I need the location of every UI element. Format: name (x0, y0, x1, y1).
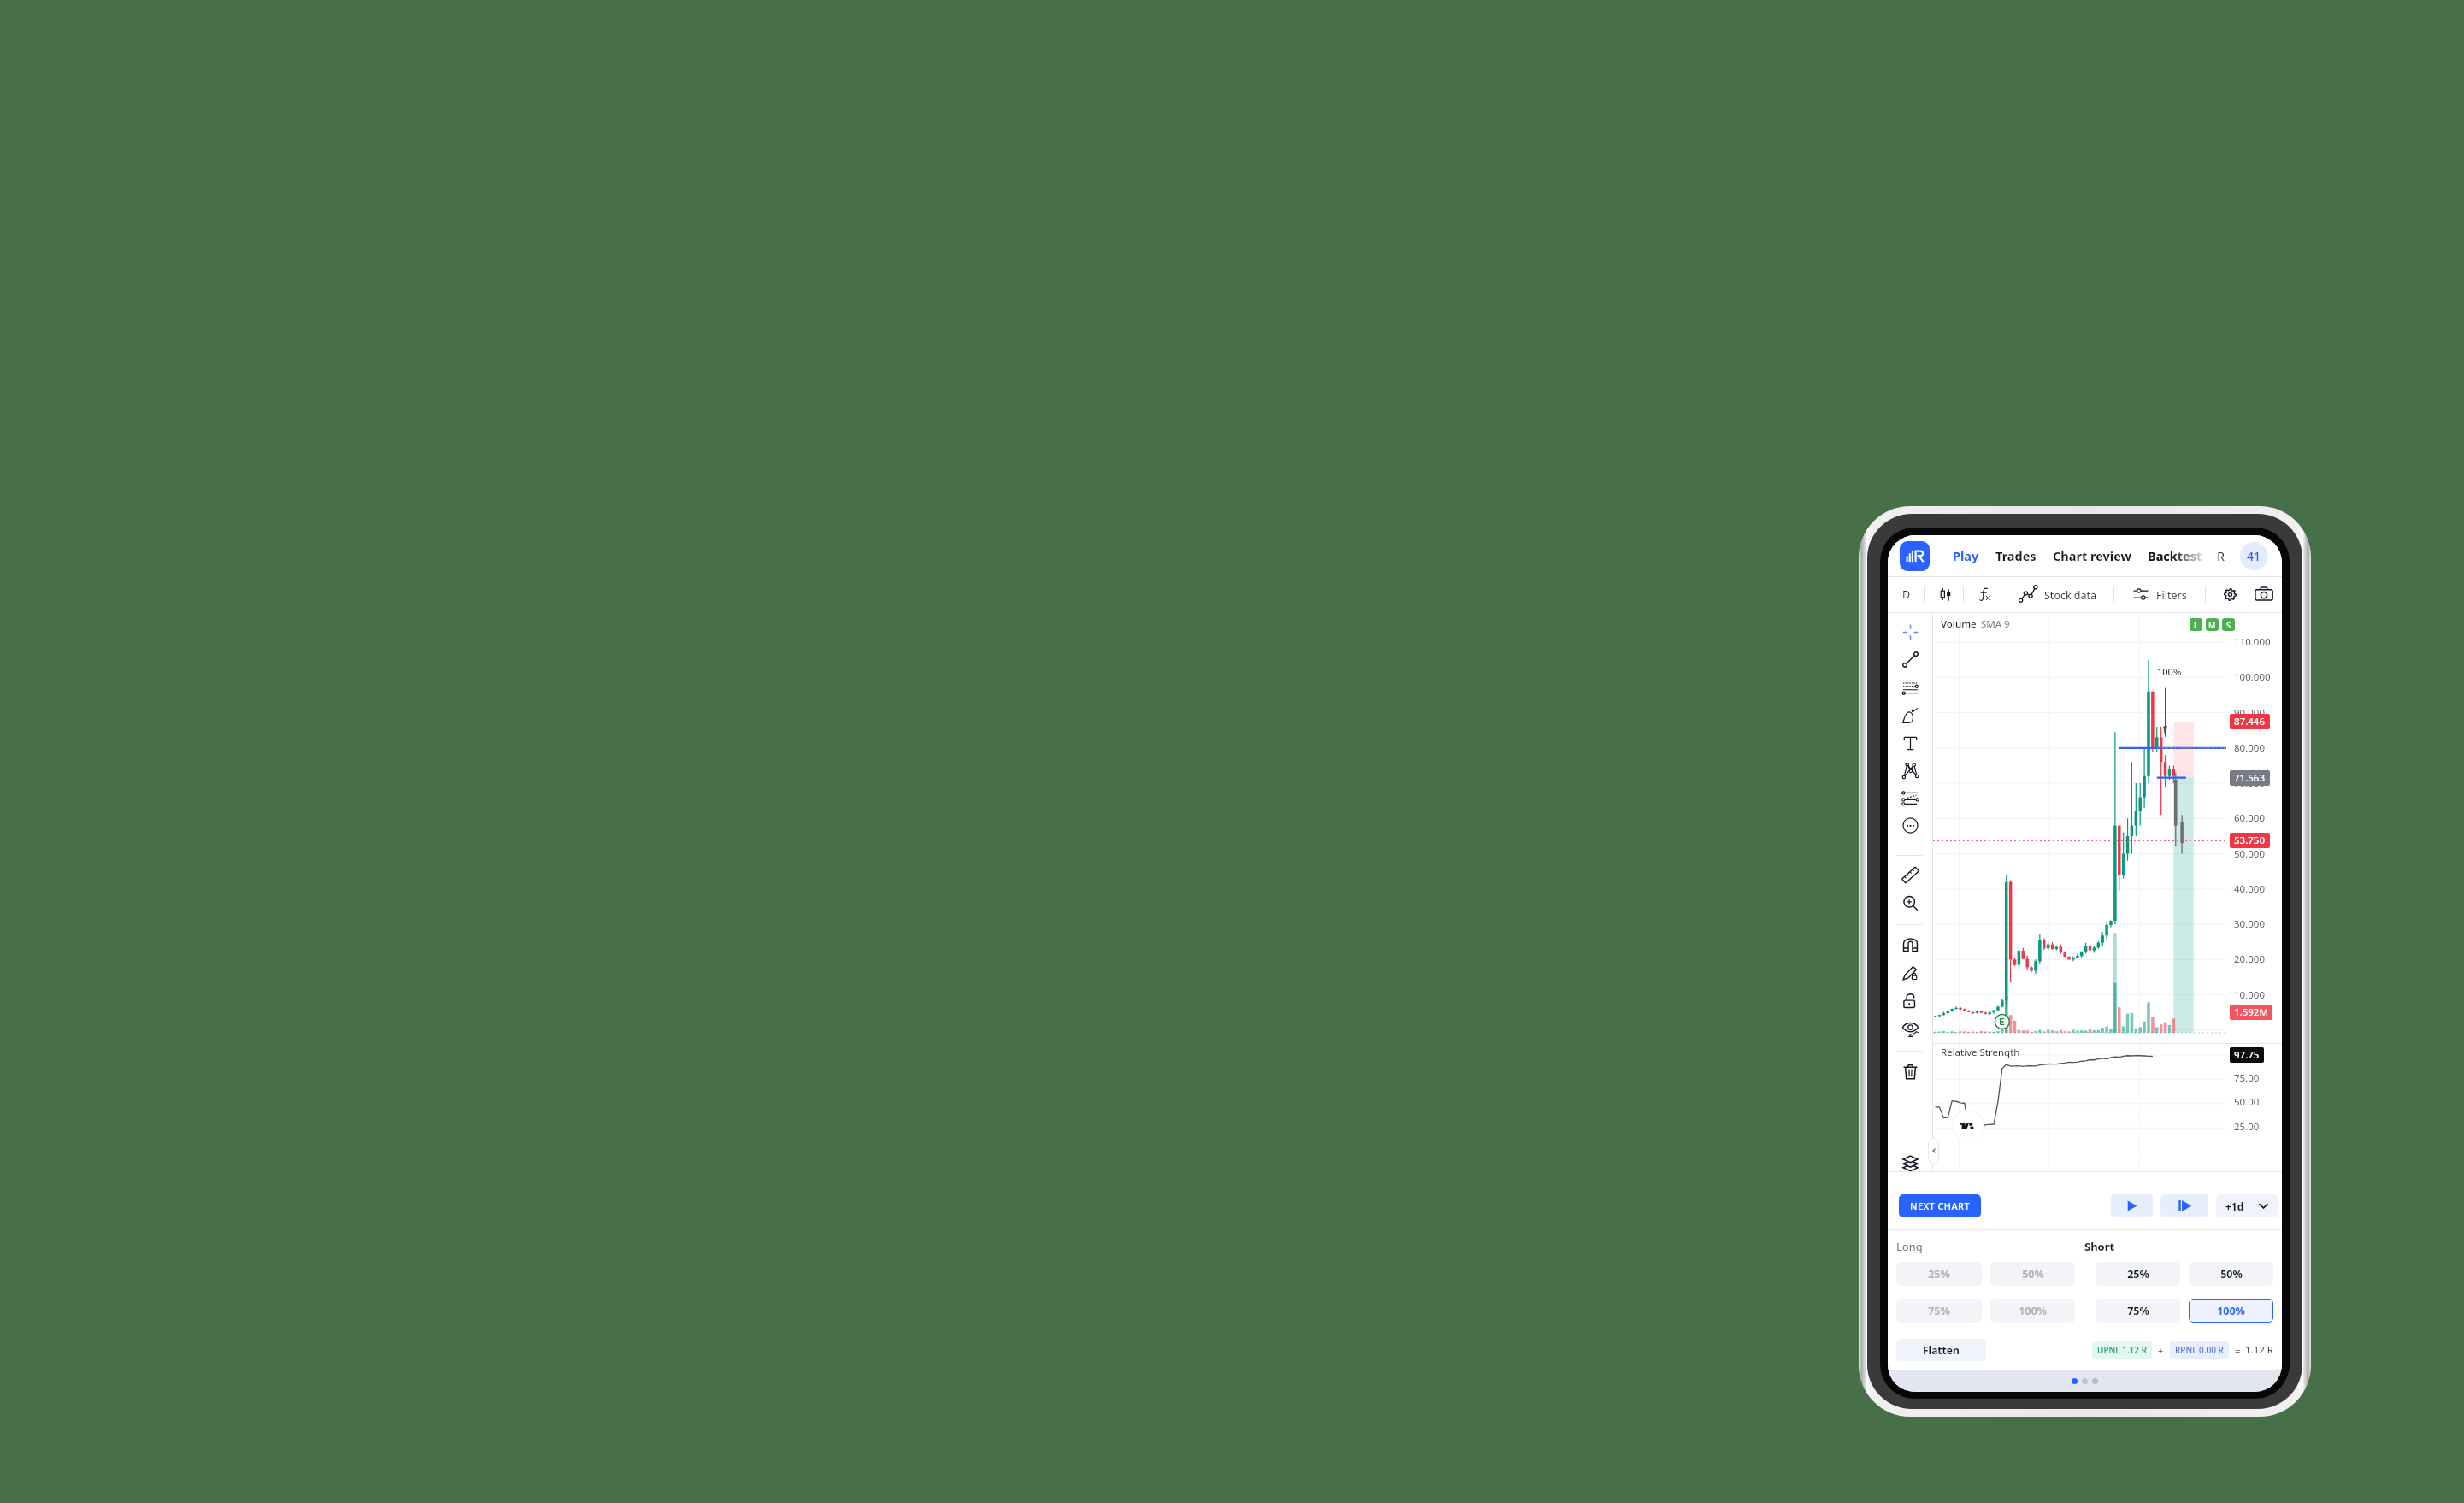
button[interactable]: Emoji (1893, 812, 1927, 838)
button[interactable]: Object tree (1893, 1150, 1927, 1176)
staticText: 97.75 (2234, 1048, 2260, 1062)
button[interactable]: 75% (1896, 1299, 1982, 1323)
staticText: 40.000 (2234, 882, 2265, 896)
button[interactable]: Crosshair (1893, 619, 1927, 645)
button[interactable]: Horizontal levels (1893, 675, 1927, 700)
staticText: Relative Strength (1941, 1046, 2020, 1059)
staticText: RPNL 0.00 R (2175, 1344, 2224, 1356)
button[interactable]: Play (2111, 1194, 2153, 1217)
button[interactable]: Trend line (1893, 646, 1927, 672)
button[interactable]: Brush (1893, 703, 1927, 728)
staticText: 41 (2247, 548, 2261, 564)
button[interactable]: Trades (1995, 547, 2037, 564)
button[interactable]: Play (1953, 547, 1979, 564)
staticText: 75% (2127, 1304, 2149, 1318)
staticText: 53.750 (2234, 834, 2266, 847)
staticText: 100% (2157, 665, 2182, 678)
staticText: Volume (1941, 617, 1977, 631)
staticText: Short (2084, 1239, 2273, 1254)
button[interactable]: Chart settings (2220, 582, 2240, 606)
staticText: R (2217, 547, 2225, 564)
button[interactable]: Lock drawings (1893, 987, 1927, 1013)
staticText: 50% (2022, 1267, 2044, 1282)
staticText: Chart review (2053, 547, 2131, 564)
staticText: +1d (2225, 1199, 2244, 1213)
button[interactable]: Measure (1893, 862, 1927, 887)
button[interactable]: NEXT CHART (1899, 1194, 1981, 1217)
button[interactable]: S (2222, 618, 2235, 631)
staticText: SMA 9 (1981, 617, 2010, 631)
staticText: 30.000 (2234, 917, 2265, 931)
button[interactable]: 100% (1990, 1299, 2075, 1323)
staticText: UPNL 1.12 R (2097, 1344, 2147, 1356)
staticText: 25% (1928, 1267, 1950, 1282)
staticText: 50% (2220, 1267, 2243, 1282)
button[interactable]: Step forward one bar (2160, 1194, 2208, 1217)
button[interactable]: Stock data (2044, 588, 2097, 603)
button[interactable]: Filters (2156, 588, 2187, 603)
staticText: 60.000 (2234, 811, 2265, 825)
staticText: Trades (1995, 547, 2037, 564)
button[interactable]: 50% (2189, 1262, 2273, 1286)
button[interactable]: Indicators (1975, 582, 1994, 606)
staticText: 75.00 (2234, 1071, 2260, 1085)
staticText: = (2235, 1344, 2241, 1357)
staticText: 70.000 (2234, 776, 2265, 790)
staticText: 1.592M (2234, 1005, 2268, 1019)
button[interactable]: Zoom in (1893, 890, 1927, 916)
button[interactable]: Projection (1893, 785, 1927, 810)
staticText: 87.446 (2234, 715, 2266, 728)
button[interactable]: Magnet mode (1893, 931, 1927, 957)
button[interactable]: D (1900, 586, 1913, 603)
staticText: 90.000 (2234, 706, 2265, 720)
button[interactable]: Chart type (1936, 582, 1955, 606)
staticText: D (1902, 587, 1911, 602)
button[interactable]: Filters (2131, 582, 2151, 606)
staticText: 100% (2217, 1304, 2245, 1318)
button[interactable]: L (2190, 618, 2202, 631)
button[interactable]: M (2206, 618, 2219, 631)
staticText: Backtest (2148, 547, 2202, 564)
button[interactable]: Text (1893, 730, 1927, 756)
staticText: 100% (2019, 1304, 2047, 1318)
button[interactable]: Take a snapshot (2252, 582, 2276, 606)
button[interactable]: 75% (2096, 1299, 2180, 1323)
staticText: NEXT CHART (1910, 1199, 1970, 1212)
staticText: 50.00 (2234, 1095, 2260, 1109)
staticText: 50.000 (2234, 847, 2265, 861)
button[interactable]: Backtest (2148, 547, 2202, 564)
staticText: 25.00 (2234, 1120, 2260, 1134)
staticText: M (2208, 620, 2216, 630)
button[interactable]: Patterns (1893, 757, 1927, 783)
staticText: L (2194, 620, 2198, 630)
staticText: Play (1953, 547, 1979, 564)
button[interactable]: Collapse pane (1928, 1138, 1939, 1164)
button[interactable]: 25% (1896, 1262, 1982, 1286)
staticText: 110.000 (2234, 635, 2271, 649)
button[interactable]: 50% (1990, 1262, 2075, 1286)
staticText: 80.000 (2234, 741, 2265, 755)
staticText: 1.12 R (2245, 1343, 2273, 1357)
staticText: Flatten (1923, 1343, 1960, 1357)
staticText: S (2226, 620, 2231, 630)
button[interactable]: Chart review (2053, 547, 2131, 564)
button[interactable]: Replay app logo (1900, 541, 1930, 571)
staticText: 75% (1928, 1304, 1950, 1318)
staticText: 25% (2127, 1267, 2149, 1282)
staticText: Long (1896, 1239, 2084, 1254)
button[interactable]: Flatten (1896, 1339, 1986, 1361)
staticText: 10.000 (2234, 988, 2265, 1002)
staticText: 71.563 (2234, 771, 2266, 785)
button[interactable]: Stay in drawing mode (1893, 959, 1927, 985)
button[interactable]: Hide drawings (1893, 1016, 1927, 1041)
button[interactable]: +1d (2216, 1194, 2278, 1217)
staticText: 20.000 (2234, 952, 2265, 966)
button[interactable]: 41 (2240, 542, 2268, 570)
button[interactable]: 100% (2189, 1299, 2273, 1323)
staticText: + (2158, 1344, 2164, 1357)
staticText: 100.000 (2234, 670, 2271, 684)
button[interactable]: Stock data (2016, 582, 2040, 606)
button[interactable]: 25% (2096, 1262, 2180, 1286)
button[interactable]: Remove drawings (1893, 1058, 1927, 1084)
